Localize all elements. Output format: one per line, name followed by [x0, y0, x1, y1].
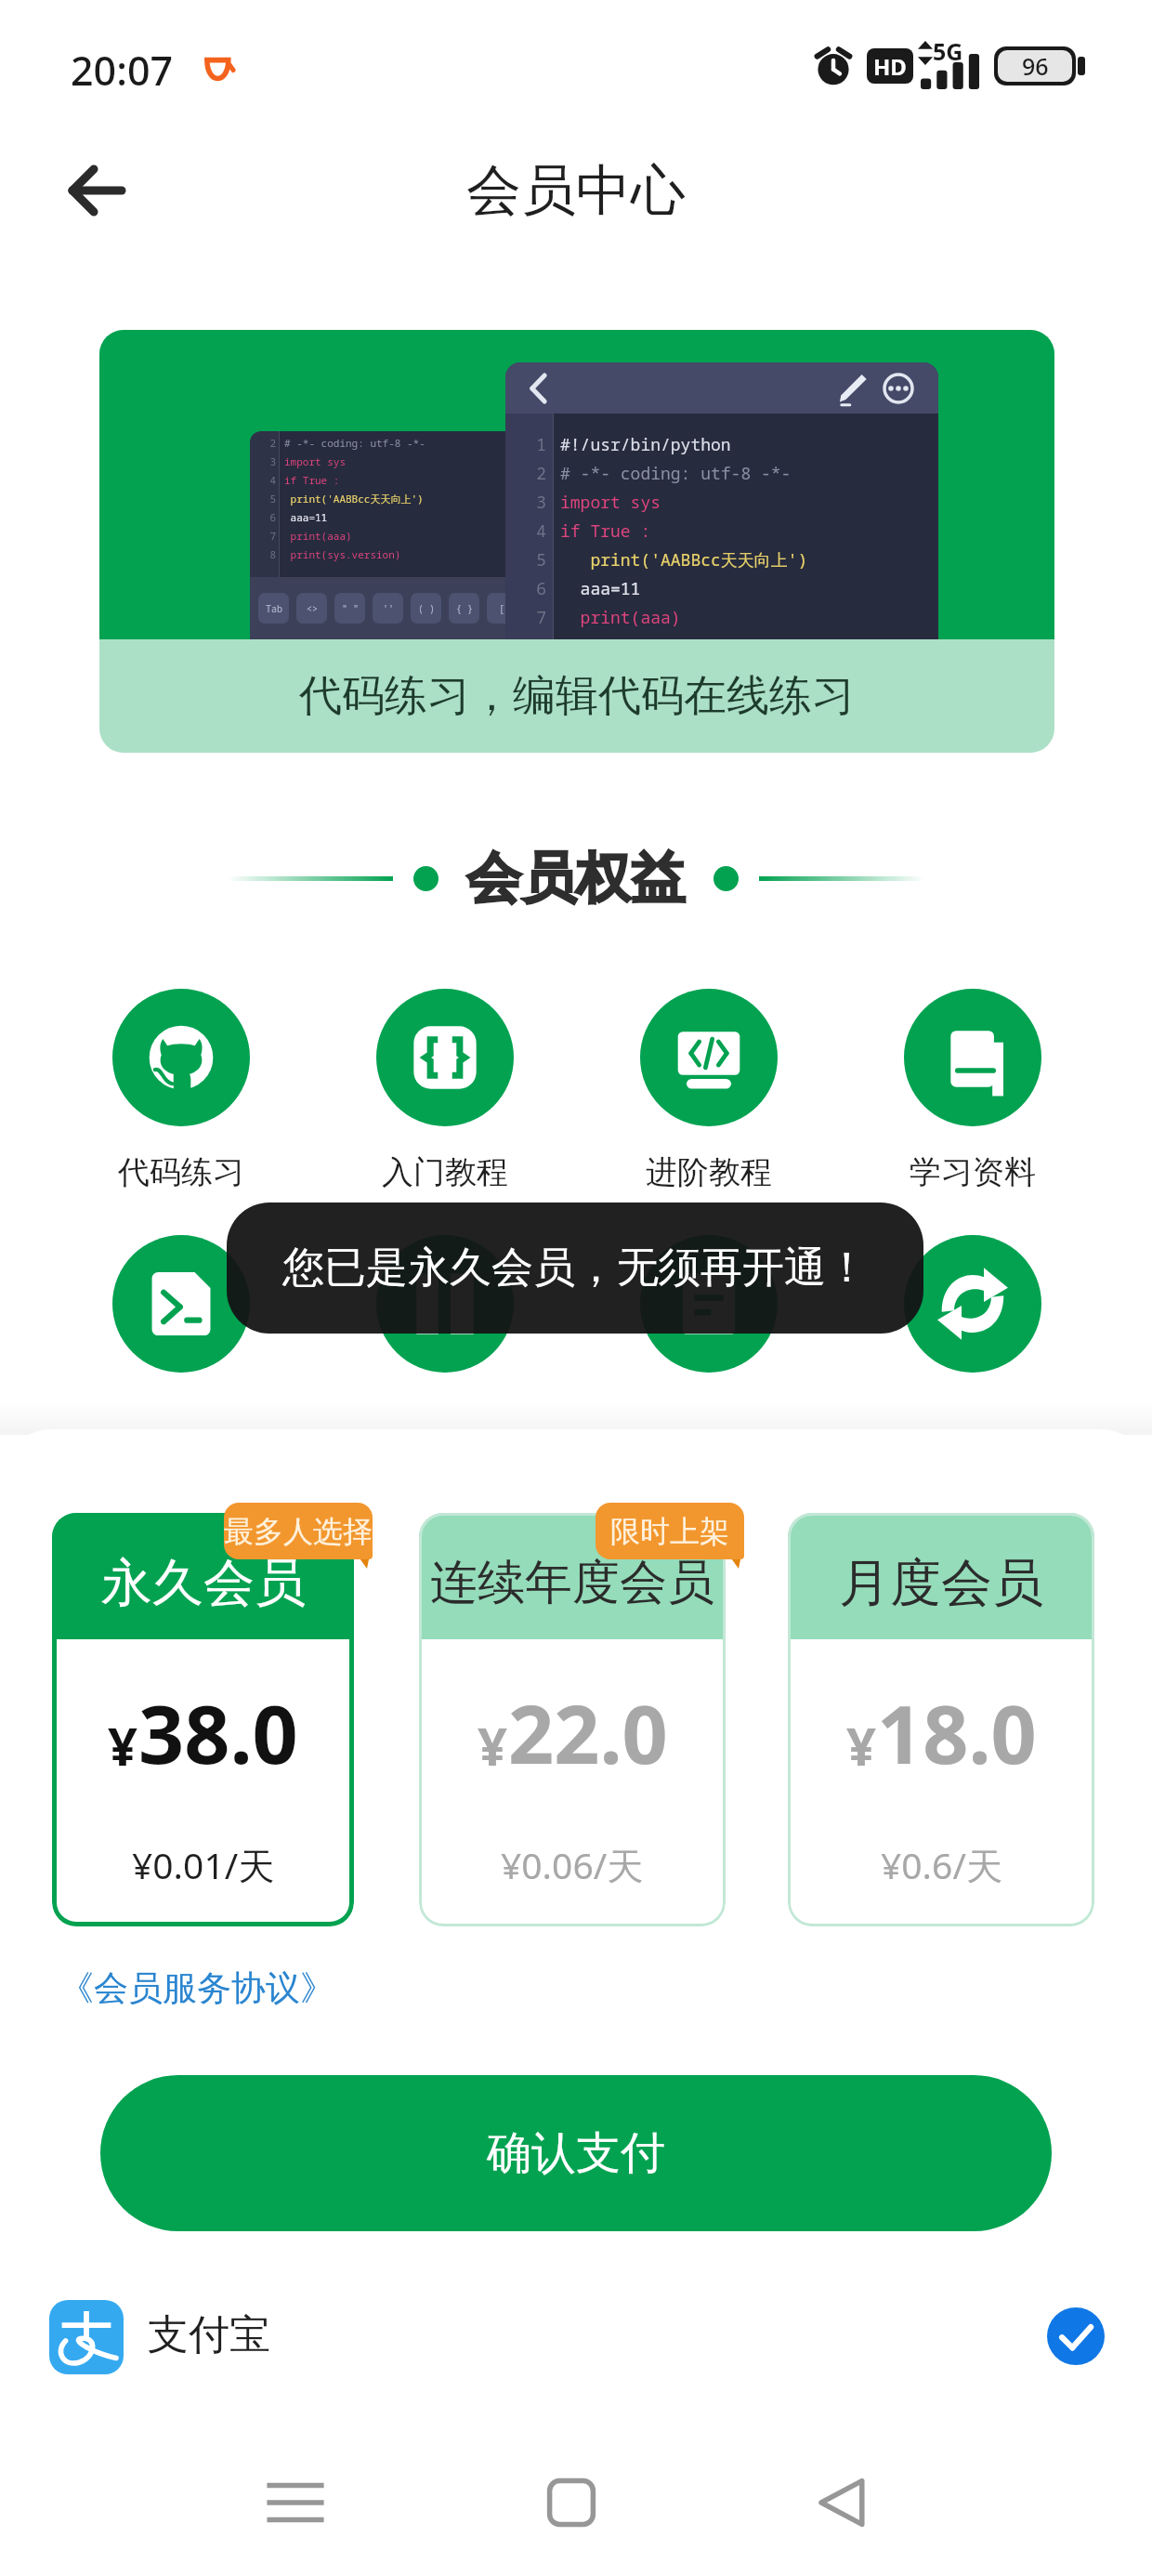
staticText: 7 — [255, 529, 276, 543]
staticText: 4 — [255, 473, 276, 487]
staticText: ¥0.06/天 — [501, 1840, 644, 1889]
staticText: import sys — [284, 454, 346, 468]
staticText: 22.0 — [508, 1678, 668, 1787]
staticText: 38.0 — [138, 1678, 298, 1787]
staticText: 连续年度会员 — [430, 1553, 714, 1612]
staticText: 96 — [1022, 50, 1049, 82]
button[interactable]: 版本更新 — [884, 1235, 1061, 1435]
staticText: import sys — [560, 491, 661, 514]
staticText: 3 — [255, 454, 276, 468]
staticText: 会员中心 — [466, 156, 686, 225]
staticText: 支付宝 — [148, 2309, 270, 2360]
button[interactable]: Back — [46, 138, 149, 240]
staticText: HD — [873, 51, 907, 82]
button[interactable]: 月度会员 — [788, 1513, 1094, 1926]
staticText: 8 — [255, 547, 276, 561]
staticText: print('AABBcc天天向上') — [284, 492, 424, 506]
staticText: 5G — [933, 35, 963, 67]
staticText: 6 — [513, 577, 546, 600]
button[interactable]: 代码仓库 — [357, 1235, 533, 1435]
button[interactable]: 学习笔记 — [621, 1235, 797, 1435]
staticText: 限时上架 — [610, 1513, 729, 1550]
staticText: 永久会员 — [101, 1551, 306, 1615]
staticText: print(sys.version) — [284, 547, 401, 561]
staticText: print('AABBcc天天向上') — [560, 548, 808, 572]
staticText: 3 — [513, 491, 546, 514]
staticText: 代码练习，编辑代码在线练习 — [299, 669, 855, 723]
button[interactable]: Recent apps — [240, 2447, 351, 2558]
staticText: { } — [456, 602, 473, 615]
staticText: <> — [307, 602, 318, 615]
button[interactable]: 在线运行 — [93, 1235, 269, 1435]
button[interactable]: 支付宝 selected — [37, 2281, 1115, 2391]
button[interactable]: 学习资料 — [884, 989, 1061, 1189]
staticText: [ — [499, 602, 504, 615]
button[interactable]: 代码练习 — [93, 989, 269, 1189]
staticText: 进阶教程 — [646, 1152, 772, 1189]
button[interactable]: 2 — [99, 330, 1054, 753]
button[interactable]: 确认支付 — [100, 2075, 1052, 2231]
staticText: 《会员服务协议》 — [59, 1966, 334, 2010]
staticText: if True : — [284, 473, 340, 487]
staticText: aaa=11 — [560, 577, 641, 600]
button[interactable]: 《会员服务协议》 — [59, 1966, 334, 2010]
staticText: Tab — [266, 602, 282, 615]
staticText: #!/usr/bin/python — [560, 433, 731, 456]
staticText: if True : — [560, 519, 651, 543]
button[interactable]: 进阶教程 — [621, 989, 797, 1189]
staticText: " " — [342, 602, 359, 615]
button[interactable]: Home — [516, 2447, 627, 2558]
button[interactable]: 入门教程 — [357, 989, 533, 1189]
staticText: 2 — [513, 462, 546, 485]
staticText: 入门教程 — [382, 1152, 508, 1189]
staticText: print(aaa) — [284, 529, 352, 543]
staticText: 7 — [513, 606, 546, 629]
staticText: 2 — [255, 436, 276, 450]
staticText: 6 — [255, 510, 276, 524]
staticText: ¥0.01/天 — [132, 1840, 275, 1889]
staticText: print(aaa) — [560, 606, 681, 629]
staticText: ¥ — [846, 1710, 877, 1781]
staticText: 18.0 — [877, 1678, 1037, 1787]
staticText: 确认支付 — [487, 2125, 665, 2181]
staticText: 1 — [513, 433, 546, 456]
staticText: 5 — [513, 548, 546, 572]
staticText: ¥ — [108, 1710, 138, 1781]
button[interactable]: Back — [788, 2447, 899, 2558]
staticText: ¥ — [478, 1710, 508, 1781]
staticText: 月度会员 — [839, 1551, 1043, 1615]
button[interactable]: 永久会员 — [52, 1513, 354, 1926]
staticText: 20:07 — [71, 43, 174, 98]
staticText: # -*- coding: utf-8 -*- — [560, 462, 792, 485]
staticText: 最多人选择 — [224, 1513, 373, 1550]
staticText: 会员权益 — [466, 844, 686, 913]
staticText: ( ) — [418, 602, 435, 615]
staticText: # -*- coding: utf-8 -*- — [284, 436, 425, 450]
staticText: aaa=11 — [284, 510, 328, 524]
staticText: 4 — [513, 519, 546, 543]
staticText: '' — [383, 602, 394, 615]
staticText: ¥0.6/天 — [881, 1840, 1002, 1889]
staticText: 您已是永久会员，无须再开通！ — [282, 1242, 868, 1295]
staticText: 代码练习 — [118, 1152, 244, 1189]
staticText: 学习资料 — [910, 1152, 1036, 1189]
staticText: 5 — [255, 492, 276, 506]
button[interactable]: 连续年度会员 — [419, 1513, 726, 1926]
